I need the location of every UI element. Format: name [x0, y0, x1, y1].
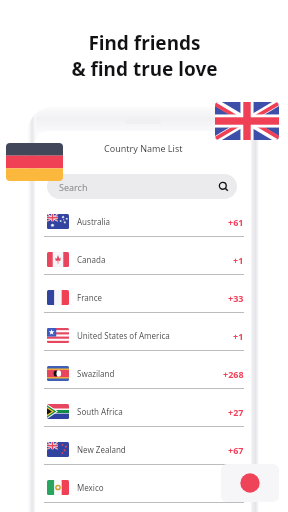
button[interactable]: Mexico	[35, 465, 251, 503]
staticText: New Zealand	[77, 444, 126, 455]
staticText: +61	[228, 216, 244, 228]
staticText: Search	[59, 181, 88, 193]
staticText: +27	[228, 406, 244, 418]
button[interactable]: Australia	[35, 199, 251, 237]
staticText: Country Name List	[104, 142, 183, 154]
staticText: +1	[233, 330, 244, 342]
staticText: & find true love	[71, 56, 218, 82]
button[interactable]: France	[35, 275, 251, 313]
button[interactable]: United States of America	[35, 313, 251, 351]
staticText: +33	[228, 292, 244, 304]
button[interactable]: United Kingdom	[215, 102, 279, 140]
staticText: United States of America	[77, 330, 170, 341]
button[interactable]: Japan	[221, 464, 279, 502]
staticText: +268	[223, 368, 244, 380]
button[interactable]: New Zealand	[35, 427, 251, 465]
staticText: +67	[228, 444, 244, 456]
staticText: Swaziland	[77, 368, 115, 379]
button[interactable]: Swaziland	[35, 351, 251, 389]
staticText: Mexico	[77, 482, 104, 493]
button[interactable]: South Africa	[35, 389, 251, 427]
button[interactable]: Search	[217, 180, 231, 194]
button[interactable]: Germany	[6, 143, 63, 181]
staticText: South Africa	[77, 406, 123, 417]
staticText: Australia	[77, 216, 111, 227]
staticText: Canada	[77, 254, 106, 265]
staticText: France	[77, 292, 103, 303]
staticText: +52	[228, 482, 244, 494]
button[interactable]: Search	[47, 174, 237, 199]
button[interactable]: Canada	[35, 237, 251, 275]
staticText: Find friends	[88, 30, 201, 56]
staticText: +1	[233, 254, 244, 266]
